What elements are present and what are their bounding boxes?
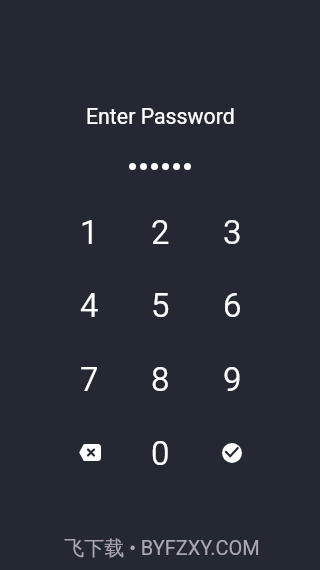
button[interactable]: Backspace bbox=[56, 420, 122, 486]
button[interactable]: Confirm bbox=[199, 420, 265, 486]
button[interactable]: 0 bbox=[127, 420, 193, 486]
staticText: 8 bbox=[151, 360, 170, 399]
button[interactable]: 8 bbox=[127, 346, 193, 412]
staticText: 3 bbox=[223, 213, 242, 252]
staticText: 飞下载 • BYFZXY.COM bbox=[64, 536, 260, 561]
staticText: 6 bbox=[223, 286, 242, 325]
staticText: Enter Password bbox=[86, 104, 235, 129]
button[interactable]: 3 bbox=[199, 199, 265, 265]
button[interactable]: 7 bbox=[56, 346, 122, 412]
staticText: 0 bbox=[151, 434, 170, 473]
staticText: 2 bbox=[151, 213, 170, 252]
button[interactable]: 1 bbox=[56, 199, 122, 265]
button[interactable]: 9 bbox=[199, 346, 265, 412]
staticText: 5 bbox=[151, 286, 170, 325]
button[interactable]: 4 bbox=[56, 272, 122, 338]
button[interactable]: 5 bbox=[127, 272, 193, 338]
staticText: 4 bbox=[80, 286, 99, 325]
staticText: 9 bbox=[223, 360, 242, 399]
staticText: 7 bbox=[80, 360, 99, 399]
button[interactable]: 6 bbox=[199, 272, 265, 338]
staticText: 1 bbox=[80, 213, 99, 252]
button[interactable]: 2 bbox=[127, 199, 193, 265]
